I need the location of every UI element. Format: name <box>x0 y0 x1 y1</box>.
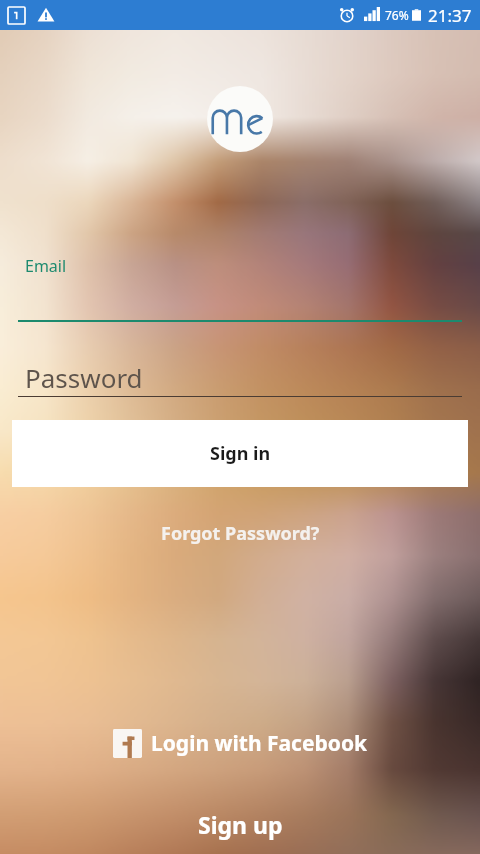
staticText: Password <box>25 360 143 395</box>
button[interactable]: App logo <box>207 86 273 152</box>
staticText: 21:37 <box>428 4 472 27</box>
staticText: Sign in <box>210 441 271 466</box>
staticText: Login with Facebook <box>151 729 368 758</box>
button[interactable]: Sign up <box>180 806 300 842</box>
staticText: Email <box>25 255 67 277</box>
staticText: Forgot Password? <box>161 521 320 546</box>
button[interactable]: Login with Facebook <box>100 724 380 762</box>
button[interactable]: Forgot Password? <box>160 518 320 548</box>
staticText: 76% <box>385 7 409 23</box>
button[interactable]: Sign in <box>12 420 468 487</box>
staticText: Sign up <box>198 809 283 840</box>
